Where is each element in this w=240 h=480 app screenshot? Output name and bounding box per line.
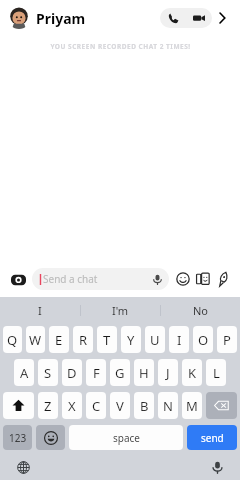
button[interactable]: A [14,359,34,386]
staticText: O [198,331,209,349]
button[interactable]: N [158,392,178,419]
button[interactable]: G [110,359,130,386]
staticText: T [103,331,111,349]
button[interactable]: I [169,326,189,353]
staticText: R [79,331,88,349]
staticText: P [223,331,231,349]
staticText: send [201,431,224,445]
button[interactable]: Send a chat [32,268,169,290]
button[interactable]: B [134,392,154,419]
staticText: J [166,364,170,382]
button[interactable]: I'm [81,297,160,323]
staticText: F [93,364,100,382]
staticText: I [38,303,42,318]
button[interactable]: W [26,326,45,353]
button[interactable]: Backspace [206,392,237,419]
staticText: 123 [9,431,27,445]
button[interactable]: Shift [3,392,34,419]
button[interactable]: Voice message [149,271,165,287]
staticText: K [188,364,197,382]
staticText: I'm [112,303,129,318]
button[interactable]: No [161,297,240,323]
button[interactable]: Stickers [193,269,213,289]
button[interactable]: R [73,326,93,353]
button[interactable]: K [182,359,202,386]
button[interactable]: T [97,326,117,353]
button[interactable]: Q [3,326,22,353]
staticText: Y [127,331,135,349]
button[interactable]: P [217,326,237,353]
button[interactable]: Z [38,392,58,419]
staticText: M [186,397,198,415]
button[interactable]: H [134,359,154,386]
staticText: D [67,364,77,382]
button[interactable]: F [86,359,106,386]
button[interactable]: Voice input [206,456,228,478]
button[interactable]: X [62,392,82,419]
staticText: I [177,331,182,349]
button[interactable]: U [145,326,165,353]
staticText: space [113,431,140,445]
button[interactable]: C [86,392,106,419]
button[interactable]: Emoji keyboard [36,425,65,450]
button[interactable]: M [182,392,202,419]
staticText: V [116,397,124,415]
button[interactable]: Video call [186,8,212,28]
staticText: A [20,364,29,382]
button[interactable]: J [158,359,178,386]
staticText: W [29,331,42,349]
staticText: S [44,364,52,382]
staticText: YOU SCREEN RECORDED CHAT 2 TIMES! [50,42,191,51]
staticText: Q [7,331,18,349]
button[interactable]: V [110,392,130,419]
button[interactable]: Camera [7,268,29,290]
staticText: B [140,397,149,415]
button[interactable]: Numbers [3,425,32,450]
button[interactable]: O [193,326,213,353]
staticText: G [115,364,125,382]
button[interactable]: Profile avatar [8,7,30,29]
button[interactable]: Y [121,326,141,353]
staticText: Priyam [36,9,86,28]
staticText: L [213,364,220,382]
button[interactable]: space [69,425,183,450]
staticText: X [68,397,76,415]
button[interactable]: Emoji [173,269,193,289]
button[interactable]: send [187,425,237,450]
button[interactable]: D [62,359,82,386]
staticText: C [92,397,101,415]
button[interactable]: More [212,8,232,28]
button[interactable]: S [38,359,58,386]
button[interactable]: I [0,297,80,323]
button[interactable]: Send snap [213,269,233,289]
staticText: E [55,331,63,349]
staticText: U [150,331,160,349]
staticText: H [139,364,149,382]
button[interactable]: Voice call [160,8,186,28]
button[interactable]: L [206,359,226,386]
staticText: No [193,303,209,318]
staticText: Send a chat [43,272,98,286]
staticText: Z [44,397,52,415]
staticText: N [163,397,173,415]
button[interactable]: Change language [12,456,34,478]
button[interactable]: E [49,326,69,353]
